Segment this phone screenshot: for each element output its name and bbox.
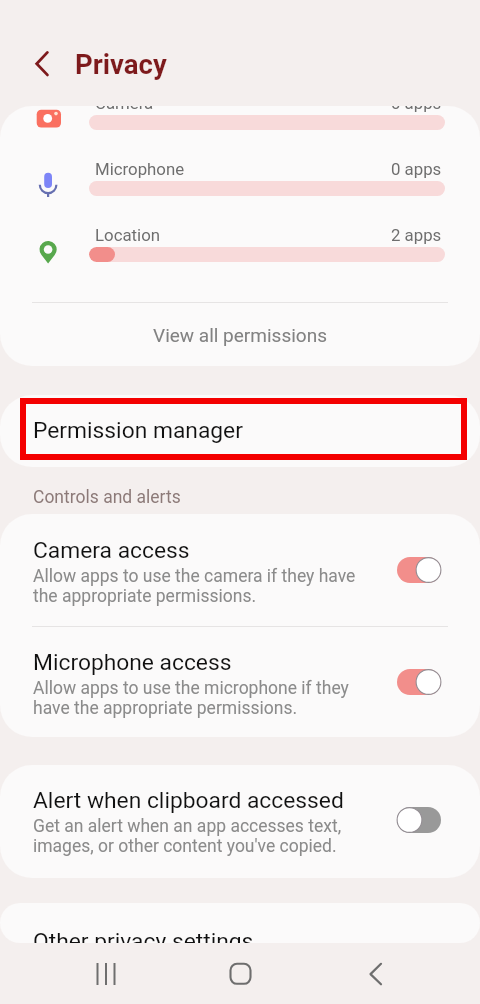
staticText: 0 apps: [391, 159, 442, 179]
button[interactable]: Location: [0, 221, 480, 287]
staticText: Allow apps to use the camera if they hav…: [33, 566, 356, 587]
staticText: Permission manager: [33, 417, 243, 444]
staticText: Get an alert when an app accesses text,: [33, 816, 342, 837]
button[interactable]: Alert when clipboard accessed, off: [392, 800, 446, 840]
staticText: images, or other content you've copied.: [33, 836, 337, 857]
button[interactable]: View all permissions: [0, 303, 480, 365]
staticText: 2 apps: [391, 225, 442, 245]
staticText: Other privacy settings: [33, 928, 254, 943]
button[interactable]: Other privacy settings: [0, 903, 480, 943]
button[interactable]: Home: [180, 944, 300, 1004]
staticText: Controls and alerts: [33, 487, 181, 508]
button[interactable]: Camera: [0, 106, 480, 155]
button[interactable]: Camera access: [0, 514, 480, 626]
staticText: 0 apps: [391, 106, 442, 113]
staticText: Alert when clipboard accessed: [33, 787, 344, 814]
staticText: have the appropriate permissions.: [33, 698, 298, 719]
button[interactable]: Recent apps: [46, 944, 166, 1004]
button[interactable]: Navigate up: [19, 42, 64, 86]
staticText: Camera access: [33, 537, 190, 564]
button[interactable]: Back: [315, 944, 435, 1004]
button[interactable]: Microphone access, on: [392, 662, 446, 702]
button[interactable]: Camera access, on: [392, 550, 446, 590]
button[interactable]: Permission manager: [0, 395, 480, 467]
staticText: the appropriate permissions.: [33, 586, 257, 607]
button[interactable]: Alert when clipboard accessed: [0, 765, 480, 876]
staticText: Privacy: [75, 48, 167, 80]
staticText: View all permissions: [0, 324, 480, 346]
staticText: Allow apps to use the microphone if they: [33, 678, 349, 699]
staticText: Microphone access: [33, 649, 232, 676]
staticText: Microphone: [95, 159, 185, 179]
staticText: Location: [95, 225, 160, 245]
staticText: Camera: [95, 106, 154, 113]
button[interactable]: Microphone access: [0, 626, 480, 737]
button[interactable]: Microphone: [0, 155, 480, 221]
